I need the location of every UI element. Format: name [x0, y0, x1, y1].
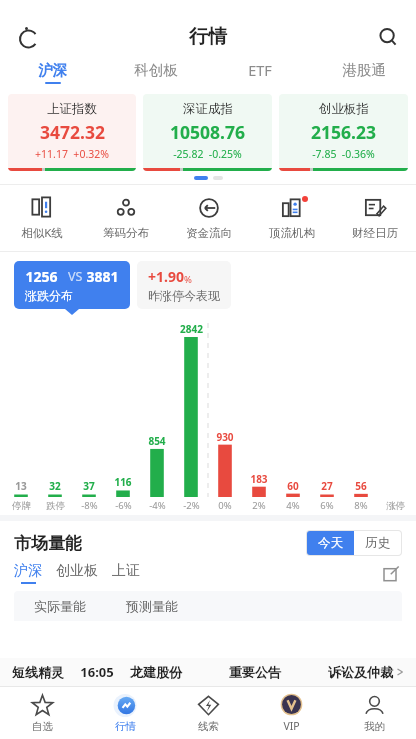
staticText: 涨停: [386, 500, 405, 512]
staticText: 0%: [218, 499, 232, 512]
staticText: 56: [355, 479, 367, 493]
button[interactable]: VIP: [250, 687, 333, 739]
staticText: -6%: [115, 499, 132, 512]
button[interactable]: 沪深: [14, 562, 42, 584]
staticText: 上证: [112, 562, 140, 580]
staticText: 历史: [365, 535, 390, 551]
staticText: 116: [114, 475, 132, 489]
staticText: 涨跌分布: [25, 288, 73, 303]
button[interactable]: Search: [372, 21, 404, 53]
staticText: 资金流向: [186, 226, 232, 240]
button[interactable]: +1.90: [137, 261, 231, 309]
staticText: 2156.23: [311, 120, 376, 144]
staticText: 3881: [86, 267, 119, 286]
staticText: 筹码分布: [103, 226, 149, 240]
staticText: 6%: [320, 499, 334, 512]
staticText: 财经日历: [352, 226, 398, 240]
staticText: +1.90: [148, 267, 184, 286]
button[interactable]: 上证: [112, 562, 140, 584]
staticText: 龙建股份: [130, 664, 182, 680]
staticText: 37: [83, 479, 95, 493]
staticText: -4%: [149, 499, 166, 512]
staticText: 4%: [286, 499, 300, 512]
staticText: 27: [321, 479, 333, 493]
button[interactable]: Expand chart: [380, 562, 402, 584]
button[interactable]: 创业板指: [279, 94, 408, 171]
staticText: 行情: [115, 720, 136, 733]
button[interactable]: Night mode: [12, 21, 44, 53]
staticText: 自选: [32, 720, 53, 733]
staticText: 16:05: [80, 663, 114, 681]
button[interactable]: ETF: [208, 56, 312, 89]
button[interactable]: 相似K线: [0, 185, 84, 251]
staticText: 诉讼及仲裁: [328, 664, 393, 680]
button[interactable]: 沪深: [0, 56, 104, 89]
staticText: 顶流机构: [269, 226, 315, 240]
staticText: 创业板指: [319, 101, 369, 117]
staticText: 预测量能: [126, 598, 178, 614]
staticText: +11.17 +0.32%: [35, 147, 109, 161]
staticText: -25.82 -0.25%: [173, 147, 242, 161]
staticText: 科创板: [134, 61, 178, 79]
staticText: 2%: [252, 499, 266, 512]
staticText: 深证成指: [183, 101, 233, 117]
button[interactable]: 历史: [354, 531, 401, 555]
button[interactable]: 线索: [167, 687, 250, 739]
staticText: 10508.76: [170, 120, 245, 144]
staticText: 32: [49, 479, 61, 493]
staticText: 港股通: [342, 61, 386, 79]
staticText: 行情: [189, 25, 227, 49]
staticText: 沪深: [38, 61, 67, 79]
staticText: 线索: [198, 720, 219, 733]
button[interactable]: 实际量能: [14, 591, 106, 621]
button[interactable]: 自选: [0, 687, 84, 739]
staticText: 实际量能: [34, 598, 86, 614]
button[interactable]: 预测量能: [106, 591, 198, 621]
staticText: 重要公告: [229, 664, 281, 680]
button[interactable]: 筹码分布: [84, 185, 167, 251]
staticText: 2842: [180, 322, 203, 336]
button[interactable]: 资金流向: [167, 185, 250, 251]
staticText: %: [184, 273, 192, 286]
staticText: 8%: [354, 499, 368, 512]
button[interactable]: 科创板: [104, 56, 208, 89]
staticText: 上证指数: [47, 101, 97, 117]
button[interactable]: 我的: [333, 687, 416, 739]
staticText: 昨涨停今表现: [148, 288, 220, 303]
staticText: -2%: [183, 499, 200, 512]
button[interactable]: 创业板: [56, 562, 98, 584]
button[interactable]: 顶流机构: [250, 185, 333, 251]
button[interactable]: 财经日历: [333, 185, 416, 251]
staticText: 854: [148, 434, 166, 448]
staticText: 我的: [364, 720, 385, 733]
button[interactable]: 行情: [84, 687, 167, 739]
staticText: 13: [15, 479, 27, 493]
staticText: 创业板: [56, 562, 98, 580]
staticText: -8%: [81, 499, 98, 512]
staticText: 183: [250, 472, 268, 486]
staticText: 相似K线: [21, 225, 63, 241]
staticText: 930: [216, 430, 234, 444]
staticText: 3472.32: [40, 120, 105, 144]
staticText: VS: [58, 268, 86, 285]
staticText: 1256: [25, 267, 58, 286]
staticText: 跌停: [46, 500, 65, 512]
staticText: -7.85 -0.36%: [312, 147, 375, 161]
staticText: 今天: [318, 535, 343, 551]
button[interactable]: 上证指数: [8, 94, 136, 171]
staticText: ETF: [248, 60, 272, 80]
staticText: 停牌: [12, 500, 31, 512]
button[interactable]: 1256: [14, 261, 130, 309]
button[interactable]: 短线精灵: [0, 658, 416, 686]
button[interactable]: 港股通: [312, 56, 416, 89]
button[interactable]: 今天: [307, 531, 354, 555]
staticText: 沪深: [14, 562, 42, 580]
staticText: 60: [287, 479, 299, 493]
button[interactable]: 深证成指: [143, 94, 272, 171]
staticText: 短线精灵: [12, 664, 64, 680]
staticText: 市场量能: [14, 533, 82, 554]
staticText: VIP: [283, 719, 300, 733]
